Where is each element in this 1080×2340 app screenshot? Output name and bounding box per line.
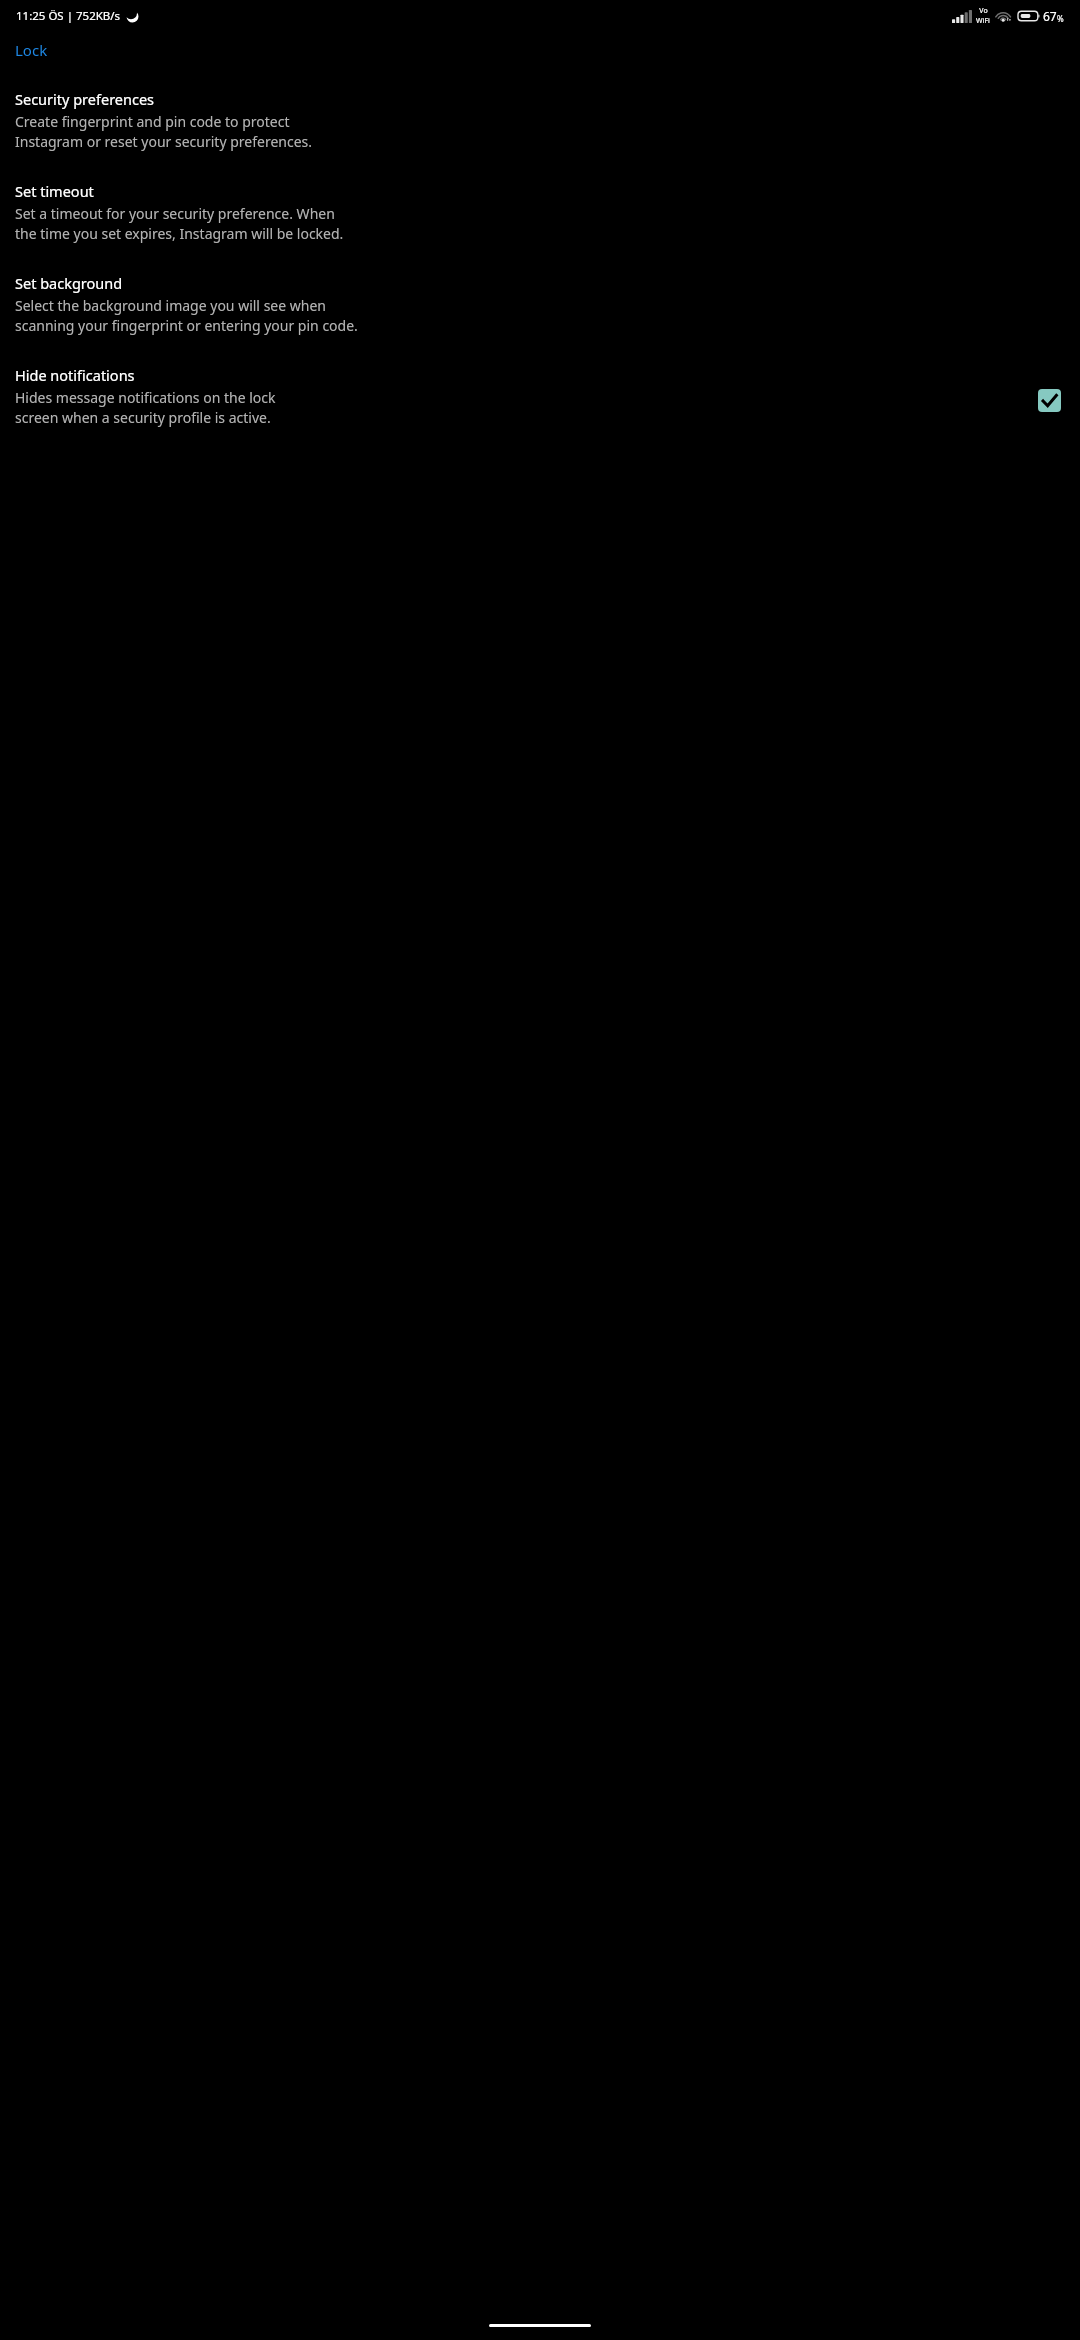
staticText: Select the background image you will see… bbox=[15, 296, 358, 335]
staticText: Set a timeout for your security preferen… bbox=[15, 204, 344, 243]
staticText: Lock bbox=[15, 40, 48, 60]
button[interactable]: Lock bbox=[0, 38, 1080, 62]
staticText: Set timeout bbox=[15, 181, 94, 201]
staticText: Create fingerprint and pin code to prote… bbox=[15, 112, 313, 151]
button[interactable]: Set background bbox=[0, 271, 1080, 337]
button[interactable]: Hide notifications bbox=[0, 363, 1080, 429]
staticText: Set background bbox=[15, 273, 123, 293]
staticText: WiFi bbox=[976, 16, 990, 26]
staticText: Security preferences bbox=[15, 89, 155, 109]
staticText: 67 bbox=[1043, 8, 1057, 24]
button[interactable]: Hide notifications toggle bbox=[1038, 389, 1061, 412]
staticText: Hide notifications bbox=[15, 365, 135, 385]
staticText: Vo bbox=[979, 6, 988, 16]
staticText: Hides message notifications on the lock … bbox=[15, 388, 276, 427]
button[interactable]: Set timeout bbox=[0, 179, 1080, 245]
staticText: 11:25 ÖS | 752KB/s bbox=[16, 8, 121, 24]
staticText: % bbox=[1057, 13, 1064, 24]
button[interactable]: Security preferences bbox=[0, 87, 1080, 153]
